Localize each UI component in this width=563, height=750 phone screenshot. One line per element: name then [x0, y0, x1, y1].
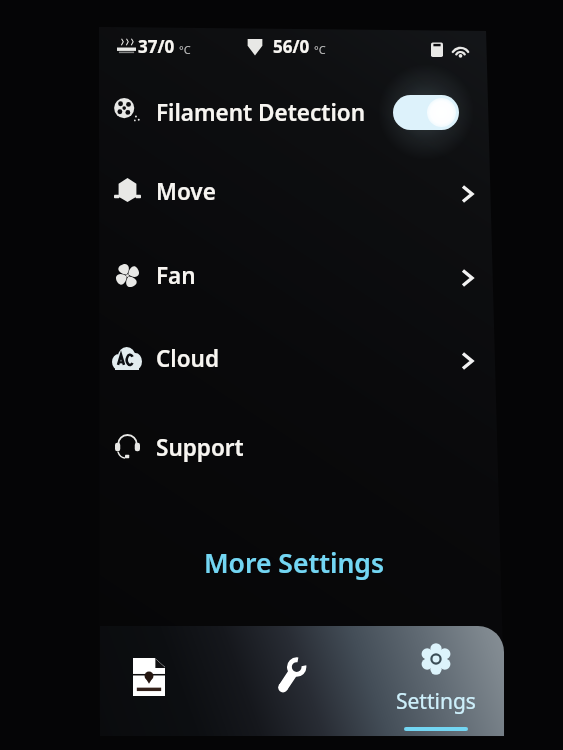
button[interactable]: Support: [100, 410, 488, 484]
staticText: Fan: [156, 260, 196, 291]
staticText: 56/0: [273, 35, 310, 58]
staticText: Move: [156, 176, 216, 207]
button[interactable]: Filament Detection: [100, 75, 488, 149]
button[interactable]: Open Move: [453, 180, 481, 208]
button[interactable]: Tools: [270, 653, 314, 697]
staticText: Filament Detection: [156, 97, 366, 128]
staticText: Cloud: [156, 343, 220, 374]
staticText: Settings: [396, 687, 476, 716]
staticText: °C: [314, 42, 326, 57]
button[interactable]: Cloud: [100, 321, 488, 395]
button[interactable]: Open Fan: [453, 264, 481, 292]
staticText: 37/0: [138, 35, 175, 58]
button[interactable]: Settings: [394, 642, 478, 731]
staticText: °C: [179, 42, 191, 57]
staticText: Support: [156, 432, 244, 463]
button[interactable]: Open Cloud: [453, 347, 481, 375]
button[interactable]: Print file: [130, 656, 168, 698]
button[interactable]: Fan: [100, 238, 488, 312]
button[interactable]: More Settings: [182, 536, 406, 590]
button[interactable]: Move: [100, 154, 488, 228]
button[interactable]: Filament Detection toggle: [393, 95, 459, 130]
staticText: More Settings: [204, 545, 384, 581]
